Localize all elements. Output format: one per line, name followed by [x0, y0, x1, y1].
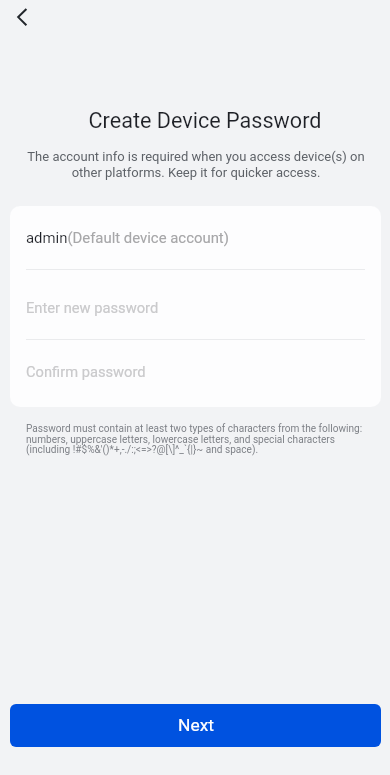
staticText: admin(Default device account): [26, 229, 229, 246]
staticText: Enter new password: [26, 299, 159, 316]
staticText: The account info is required when you ac…: [26, 149, 366, 180]
staticText: Confirm password: [26, 363, 146, 380]
staticText: Create Device Password: [20, 108, 390, 133]
button[interactable]: admin(Default device account): [10, 206, 381, 269]
button[interactable]: Next: [10, 704, 381, 747]
staticText: Password must contain at least two types…: [26, 423, 370, 456]
button[interactable]: Back: [0, 0, 44, 34]
staticText: Next: [178, 715, 214, 735]
button[interactable]: Enter new password: [10, 270, 381, 339]
button[interactable]: Confirm password: [10, 340, 381, 406]
